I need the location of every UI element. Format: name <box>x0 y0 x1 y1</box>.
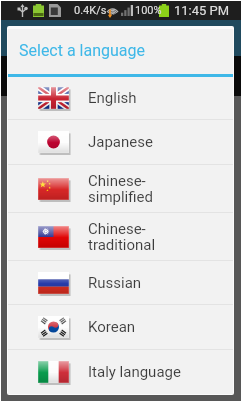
staticText: Chinese- simplified <box>88 172 153 206</box>
staticText: English <box>88 89 137 107</box>
staticText: Japanese <box>88 133 153 151</box>
button[interactable]: Chinese- traditional <box>8 213 233 260</box>
button[interactable]: Korean <box>8 305 233 349</box>
button[interactable]: Russian <box>8 261 233 304</box>
staticText: Chinese- traditional <box>88 220 156 254</box>
staticText: Select a language <box>19 41 146 60</box>
staticText: 0.4K/s <box>74 4 107 17</box>
staticText: Russian <box>88 274 142 292</box>
button[interactable]: Chinese- simplified <box>8 165 233 212</box>
staticText: 11:45 PM <box>174 3 230 18</box>
button[interactable]: Italy language <box>8 350 233 394</box>
button[interactable]: English <box>8 77 233 119</box>
staticText: 100% <box>135 4 162 17</box>
button[interactable]: Japanese <box>8 120 233 164</box>
staticText: Italy language <box>88 363 181 381</box>
staticText: Korean <box>88 318 136 336</box>
